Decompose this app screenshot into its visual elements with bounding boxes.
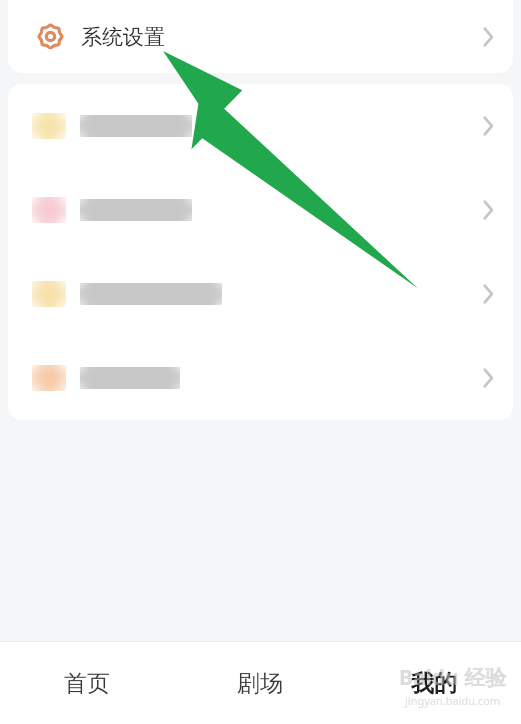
button[interactable] [8, 168, 513, 252]
staticText: 剧场 [237, 669, 283, 698]
staticText: 我的 [411, 669, 457, 698]
button[interactable]: 首页 [0, 642, 173, 724]
button[interactable]: 我的 [347, 642, 521, 724]
staticText: 首页 [64, 669, 110, 698]
button[interactable] [8, 84, 513, 168]
button[interactable] [8, 336, 513, 420]
staticText: 系统设置 [81, 24, 165, 50]
button[interactable]: 剧场 [173, 642, 347, 724]
staticText: jingyan.baidu.com [405, 693, 501, 708]
button[interactable] [8, 252, 513, 336]
staticText: Baidu 经验 [399, 663, 507, 692]
button[interactable]: 系统设置 [8, 0, 513, 73]
